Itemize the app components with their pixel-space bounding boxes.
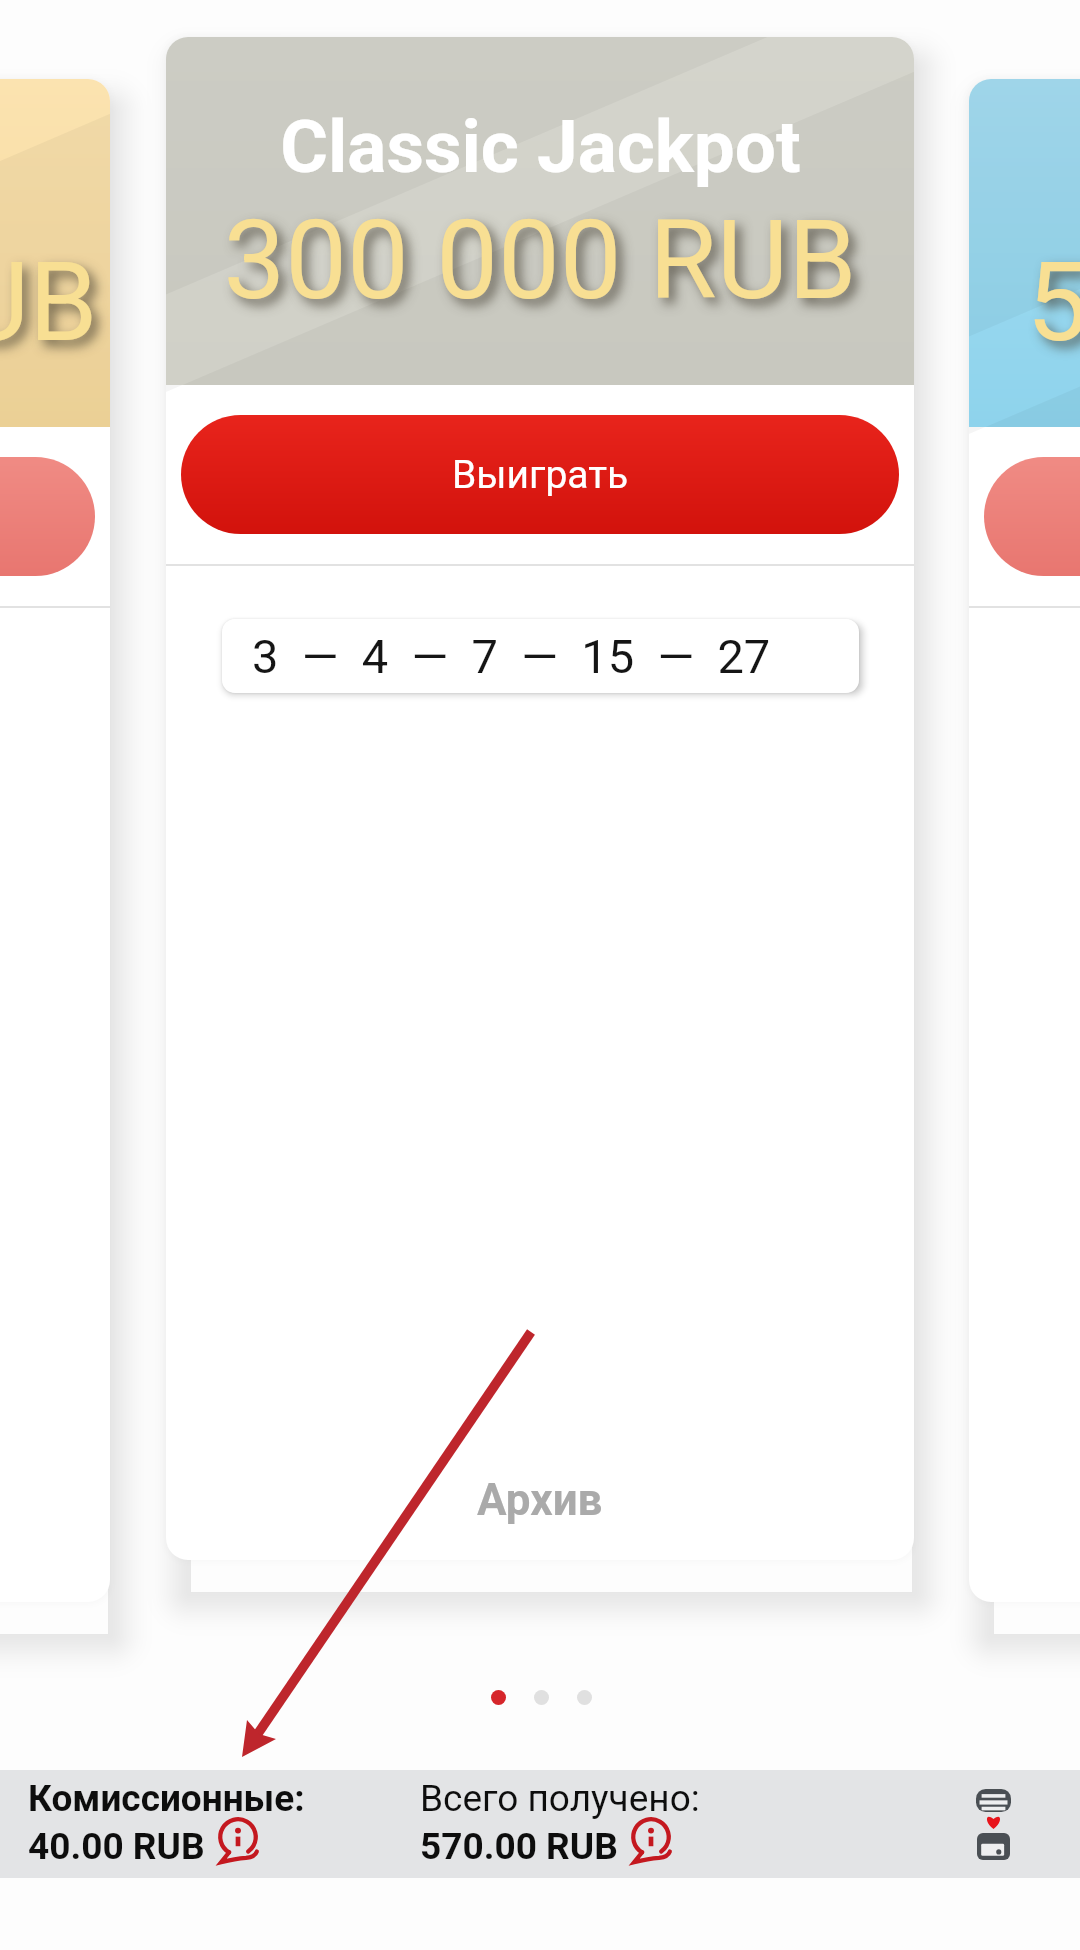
- button[interactable]: Страница 3: [577, 1690, 592, 1705]
- staticText: Classic Jackpot: [280, 104, 801, 190]
- staticText: Всего получено:: [420, 1777, 700, 1820]
- button[interactable]: Информация: [626, 1816, 676, 1866]
- staticText: 570.00 RUB: [420, 1825, 618, 1868]
- button[interactable]: Выиграть: [181, 415, 899, 534]
- staticText: 300 000 RUB: [223, 196, 857, 325]
- button[interactable]: Баланс: [976, 1789, 1011, 1860]
- button[interactable]: 500 000 RUB: [969, 79, 1080, 1602]
- button[interactable]: 3 — 4 — 7 — 15 — 27: [222, 619, 859, 693]
- button[interactable]: Информация: [213, 1816, 263, 1866]
- button[interactable]: Архив: [477, 1474, 603, 1526]
- staticText: 500 000 RUB: [1026, 238, 1080, 367]
- button[interactable]: Страница 2: [534, 1690, 549, 1705]
- staticText: 1 000 000 RUB: [0, 238, 98, 367]
- button[interactable]: Classic Jackpot: [166, 37, 914, 1560]
- button[interactable]: [0, 457, 95, 576]
- staticText: Выиграть: [452, 452, 629, 498]
- button[interactable]: [984, 457, 1080, 576]
- staticText: 40.00 RUB: [28, 1825, 205, 1868]
- button[interactable]: 1 000 000 RUB: [0, 79, 110, 1602]
- button[interactable]: Страница 1: [491, 1690, 506, 1705]
- staticText: Комиссионные:: [28, 1777, 305, 1820]
- staticText: 3 — 4 — 7 — 15 — 27: [252, 629, 829, 684]
